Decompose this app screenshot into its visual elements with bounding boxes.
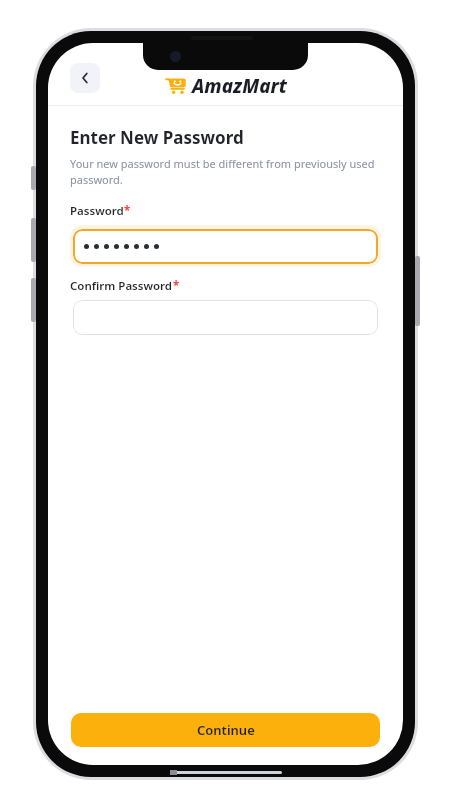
staticText: Confirm Password [70,278,173,294]
staticText: Enter New Password [70,126,244,149]
button[interactable]: Continue [71,713,380,747]
staticText: Password [70,203,124,219]
button[interactable] [73,229,378,264]
staticText: AmazMart [192,73,287,99]
staticText: Your new password must be different from… [70,156,381,187]
button[interactable]: Back [70,63,100,93]
button[interactable] [73,300,378,335]
staticText: Continue [197,721,255,739]
staticText: * [173,278,180,294]
staticText: * [124,203,131,219]
